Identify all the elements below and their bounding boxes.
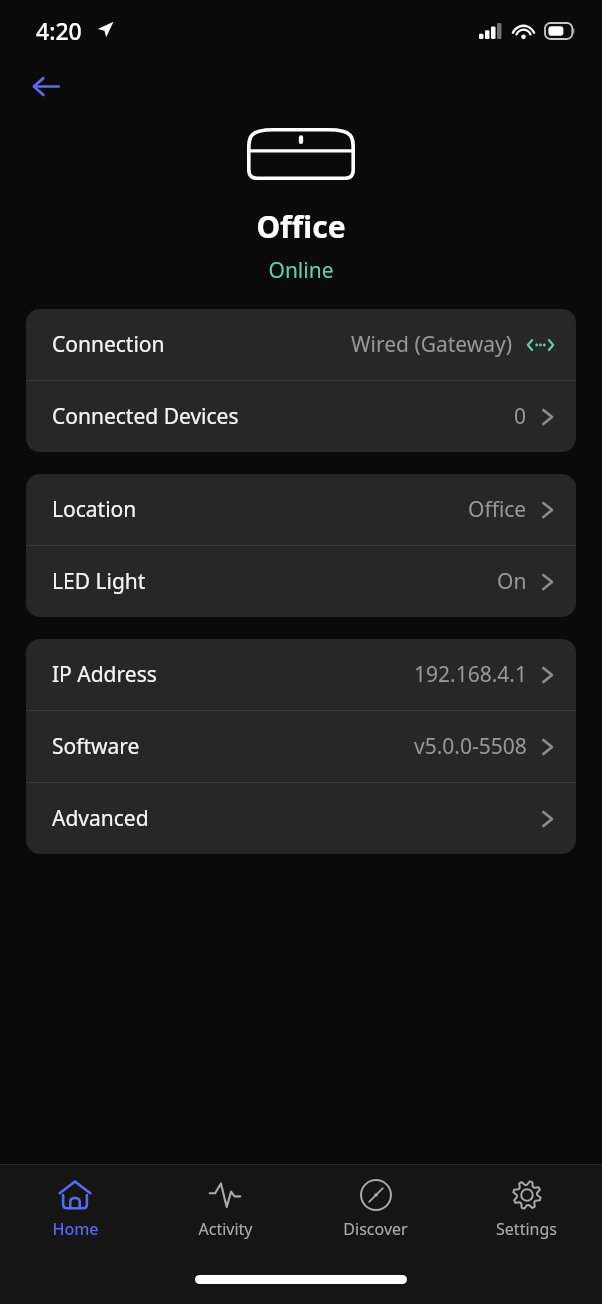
button[interactable]: Activity	[150, 1165, 300, 1260]
staticText: Settings	[496, 1218, 557, 1240]
button[interactable]: Location	[26, 474, 576, 545]
staticText: Home	[52, 1218, 99, 1240]
staticText: IP Address	[52, 660, 157, 689]
staticText: Office	[256, 206, 346, 247]
staticText: Office	[468, 495, 527, 524]
staticText: Connected Devices	[52, 402, 239, 431]
staticText: Software	[52, 732, 140, 761]
staticText: Location	[52, 495, 137, 524]
button[interactable]: Settings	[451, 1165, 602, 1260]
button[interactable]: Back	[20, 61, 70, 111]
button[interactable]: Connected Devices	[26, 381, 576, 452]
staticText: LED Light	[52, 567, 146, 596]
staticText: Discover	[343, 1218, 408, 1240]
button[interactable]: Connection	[26, 309, 576, 380]
staticText: 192.168.4.1	[414, 660, 527, 689]
staticText: On	[497, 567, 527, 596]
button[interactable]: LED Light	[26, 546, 576, 617]
staticText: 0	[514, 402, 527, 431]
staticText: Connection	[52, 330, 165, 359]
button[interactable]: Home	[0, 1165, 150, 1260]
staticText: Activity	[198, 1218, 253, 1240]
staticText: Online	[268, 256, 334, 285]
staticText: v5.0.0-5508	[414, 732, 527, 761]
staticText: 4:20	[36, 15, 82, 46]
button[interactable]: Software	[26, 711, 576, 782]
staticText: Wired (Gateway)	[351, 330, 513, 359]
staticText: Advanced	[52, 804, 149, 833]
button[interactable]: Advanced	[26, 783, 576, 854]
button[interactable]: Discover	[300, 1165, 451, 1260]
button[interactable]: IP Address	[26, 639, 576, 710]
